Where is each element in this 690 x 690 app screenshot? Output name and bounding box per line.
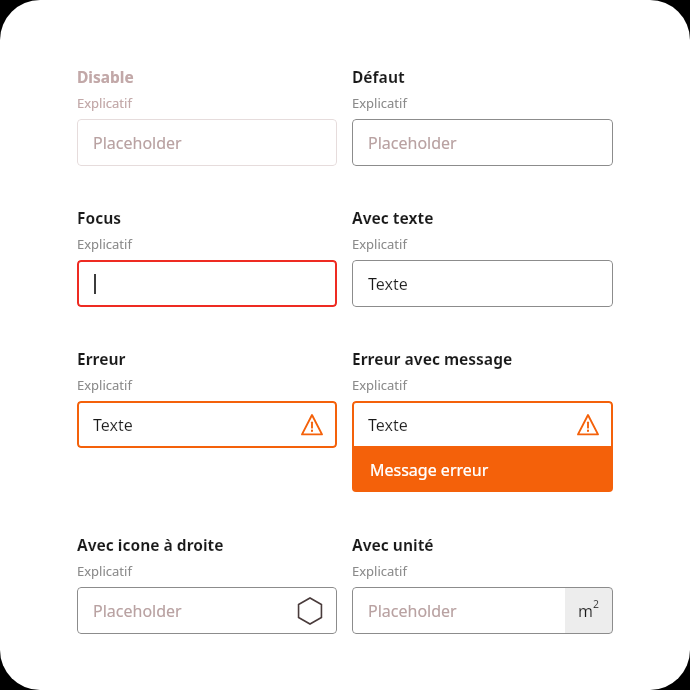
button[interactable] xyxy=(77,260,337,307)
staticText: Avec unité xyxy=(352,534,434,555)
button[interactable]: Hexagon icon xyxy=(297,598,323,624)
staticText: Explicatif xyxy=(352,376,407,394)
button[interactable]: Placeholder xyxy=(352,587,613,634)
button[interactable]: Texte xyxy=(352,401,613,448)
staticText: 2 xyxy=(593,597,600,611)
staticText: Explicatif xyxy=(77,235,132,253)
staticText: Explicatif xyxy=(352,562,407,580)
button[interactable]: Texte xyxy=(77,401,337,448)
staticText: Texte xyxy=(368,414,408,436)
staticText: Défaut xyxy=(352,66,405,87)
button[interactable]: Placeholder xyxy=(77,587,337,634)
staticText: Disable xyxy=(77,66,134,87)
staticText: Explicatif xyxy=(352,94,407,112)
button[interactable]: Texte xyxy=(352,260,613,307)
staticText: Focus xyxy=(77,207,122,228)
staticText: Explicatif xyxy=(77,94,132,112)
staticText: Avec icone à droite xyxy=(77,534,224,555)
staticText: Placeholder xyxy=(368,132,457,154)
button[interactable]: Placeholder xyxy=(77,119,337,166)
staticText: m xyxy=(578,600,593,622)
staticText: Texte xyxy=(93,414,133,436)
staticText: Explicatif xyxy=(352,235,407,253)
staticText: Explicatif xyxy=(77,562,132,580)
button[interactable]: m xyxy=(565,587,613,634)
staticText: Erreur avec message xyxy=(352,348,513,369)
staticText: Placeholder xyxy=(93,600,182,622)
staticText: Placeholder xyxy=(368,600,457,622)
button[interactable]: Message erreur xyxy=(352,448,613,492)
staticText: Explicatif xyxy=(77,376,132,394)
button[interactable]: Placeholder xyxy=(352,119,613,166)
staticText: Message erreur xyxy=(370,459,489,481)
staticText: Texte xyxy=(368,273,408,295)
staticText: Erreur xyxy=(77,348,126,369)
staticText: Avec texte xyxy=(352,207,434,228)
staticText: Placeholder xyxy=(93,132,182,154)
